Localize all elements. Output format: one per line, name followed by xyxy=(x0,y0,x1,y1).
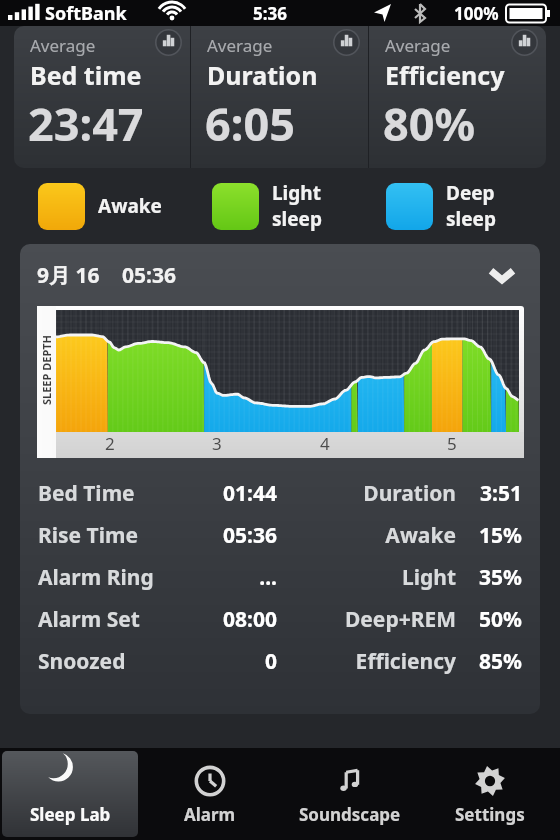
button[interactable]: Alarm xyxy=(142,751,278,837)
staticText: Light xyxy=(277,563,456,592)
staticText: 05:36 xyxy=(122,261,176,290)
staticText: Snoozed xyxy=(38,647,126,676)
staticText: SLEEP DEPTH xyxy=(39,334,54,405)
staticText: Soundscape xyxy=(299,803,401,826)
staticText: Awake xyxy=(277,521,456,550)
staticText: Average xyxy=(30,34,96,57)
button[interactable]: Average xyxy=(14,26,190,168)
button[interactable]: Bed Time xyxy=(20,472,540,514)
button[interactable]: Settings xyxy=(422,751,558,837)
staticText: 85% xyxy=(456,647,522,676)
staticText: sleep xyxy=(272,206,322,232)
staticText: 3 xyxy=(212,432,222,455)
staticText: 80% xyxy=(383,93,476,154)
button[interactable]: Show Bed time chart xyxy=(155,29,182,56)
button[interactable]: Expand xyxy=(488,261,516,289)
button[interactable]: Light xyxy=(212,168,386,244)
button[interactable]: Average xyxy=(369,26,546,168)
button[interactable]: 9月 16 xyxy=(20,244,540,306)
staticText: 08:00 xyxy=(162,605,277,634)
staticText: Bed time xyxy=(30,58,142,92)
staticText: Settings xyxy=(455,803,525,826)
staticText: 2 xyxy=(105,432,115,455)
button[interactable]: Sleep Lab xyxy=(2,751,138,837)
button[interactable]: Deep xyxy=(386,168,560,244)
staticText: 4 xyxy=(320,432,330,455)
button[interactable]: Alarm Set xyxy=(20,598,540,640)
staticText: Bed Time xyxy=(38,479,135,508)
staticText: 35% xyxy=(456,563,522,592)
button[interactable]: Snoozed xyxy=(20,640,540,682)
button[interactable]: Rise Time xyxy=(20,514,540,556)
staticText: ... xyxy=(162,563,277,592)
staticText: Average xyxy=(385,34,451,57)
staticText: Deep xyxy=(446,180,495,206)
staticText: Duration xyxy=(277,479,456,508)
staticText: Light xyxy=(272,180,321,206)
button[interactable]: Show Efficiency chart xyxy=(511,29,538,56)
staticText: 15% xyxy=(456,521,522,550)
staticText: Duration xyxy=(207,58,318,92)
staticText: 5 xyxy=(447,432,457,455)
staticText: Alarm Set xyxy=(38,605,140,634)
staticText: Sleep Lab xyxy=(30,803,111,826)
staticText: Alarm xyxy=(184,803,236,826)
staticText: Average xyxy=(207,34,273,57)
button[interactable]: Awake xyxy=(38,168,212,244)
staticText: Alarm Ring xyxy=(38,563,154,592)
staticText: Rise Time xyxy=(38,521,139,550)
staticText: 23:47 xyxy=(28,93,144,154)
staticText: SoftBank xyxy=(45,1,127,26)
staticText: 9月 16 xyxy=(37,261,100,290)
staticText: 0 xyxy=(162,647,277,676)
staticText: 100% xyxy=(454,2,499,25)
staticText: sleep xyxy=(446,206,496,232)
staticText: 01:44 xyxy=(162,479,277,508)
staticText: 6:05 xyxy=(205,93,295,154)
staticText: 3:51 xyxy=(456,479,522,508)
button[interactable]: Alarm Ring xyxy=(20,556,540,598)
staticText: Awake xyxy=(98,193,162,219)
button[interactable]: Soundscape xyxy=(282,751,418,837)
staticText: Efficiency xyxy=(385,58,505,92)
staticText: 5:36 xyxy=(253,2,287,25)
staticText: 05:36 xyxy=(162,521,277,550)
button[interactable]: Average xyxy=(191,26,368,168)
staticText: Deep+REM xyxy=(277,605,456,634)
staticText: Efficiency xyxy=(277,647,456,676)
staticText: 50% xyxy=(456,605,522,634)
button[interactable]: Show Duration chart xyxy=(333,29,360,56)
